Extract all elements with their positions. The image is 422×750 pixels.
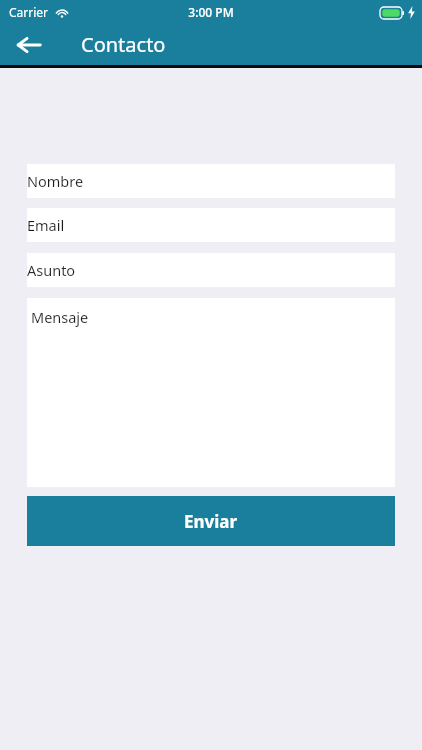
button[interactable]: Asunto <box>27 253 395 287</box>
button[interactable]: Enviar <box>27 496 395 546</box>
button[interactable]: Email <box>27 208 395 242</box>
staticText: 3:00 PM <box>188 4 234 20</box>
staticText: Mensaje <box>31 307 89 327</box>
staticText: Contacto <box>81 31 166 58</box>
staticText: Nombre <box>27 171 84 191</box>
button[interactable]: Nombre <box>27 164 395 198</box>
staticText: Enviar <box>184 510 238 533</box>
staticText: Asunto <box>27 260 76 280</box>
staticText: Email <box>27 215 65 235</box>
button[interactable]: Back <box>8 24 50 65</box>
button[interactable]: Mensaje <box>27 298 395 487</box>
staticText: Carrier <box>9 4 49 20</box>
